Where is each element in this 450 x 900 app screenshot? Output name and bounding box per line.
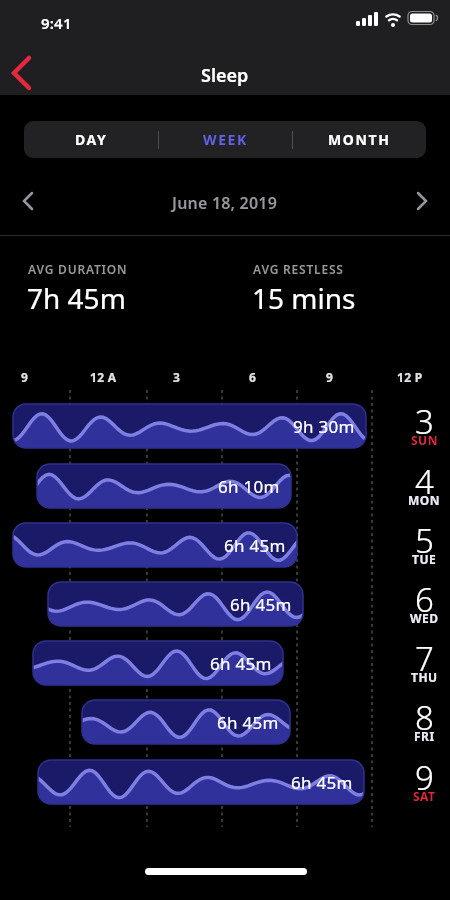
staticText: 7 (415, 636, 434, 676)
staticText: AVG DURATION (28, 261, 128, 277)
staticText: SUN (411, 432, 438, 446)
staticText: WED (410, 610, 439, 624)
button[interactable]: 6h 45m (33, 641, 283, 685)
button[interactable]: MONTH (293, 121, 426, 158)
staticText: Sleep (201, 63, 249, 88)
staticText: FRI (414, 728, 435, 742)
staticText: 9 (21, 369, 29, 385)
staticText: 8 (415, 695, 434, 735)
button[interactable]: 6h 10m (37, 464, 291, 508)
staticText: TUE (412, 551, 437, 565)
staticText: 6 (415, 577, 434, 617)
staticText: 6 (249, 369, 257, 385)
staticText: 9 (326, 369, 334, 385)
staticText: 6h 10m (218, 475, 280, 498)
staticText: 6h 45m (291, 771, 353, 794)
button[interactable] (14, 186, 44, 216)
staticText: 3 (415, 399, 434, 439)
staticText: 6h 45m (230, 593, 292, 616)
button[interactable] (0, 50, 48, 95)
staticText: 12 P (397, 369, 423, 385)
staticText: 9 (415, 755, 434, 795)
staticText: 4 (415, 459, 434, 499)
button[interactable]: WEEK (159, 121, 292, 158)
staticText: SAT (413, 788, 436, 802)
staticText: 9h 30m (293, 415, 355, 438)
button[interactable]: 6h 45m (48, 582, 303, 626)
staticText: AVG RESTLESS (253, 261, 344, 277)
staticText: 9:41 (41, 13, 72, 33)
button[interactable]: 9h 30m (13, 404, 366, 448)
button[interactable]: 6h 45m (38, 760, 364, 804)
staticText: MON (408, 492, 441, 506)
button[interactable]: 6h 45m (82, 700, 290, 744)
staticText: MONTH (328, 130, 391, 149)
staticText: 15 mins (252, 279, 356, 317)
staticText: 6h 45m (210, 652, 272, 675)
staticText: THU (411, 669, 438, 683)
staticText: 12 A (90, 369, 117, 385)
staticText: 5 (415, 518, 434, 558)
button[interactable] (406, 186, 436, 216)
staticText: 6h 45m (224, 534, 286, 557)
button[interactable]: DAY (24, 121, 158, 158)
staticText: WEEK (203, 130, 248, 149)
staticText: DAY (75, 130, 108, 149)
staticText: June 18, 2019 (172, 192, 278, 214)
button[interactable]: 6h 45m (13, 523, 297, 567)
staticText: 7h 45m (27, 279, 126, 317)
staticText: 6h 45m (217, 711, 279, 734)
staticText: 3 (173, 369, 181, 385)
